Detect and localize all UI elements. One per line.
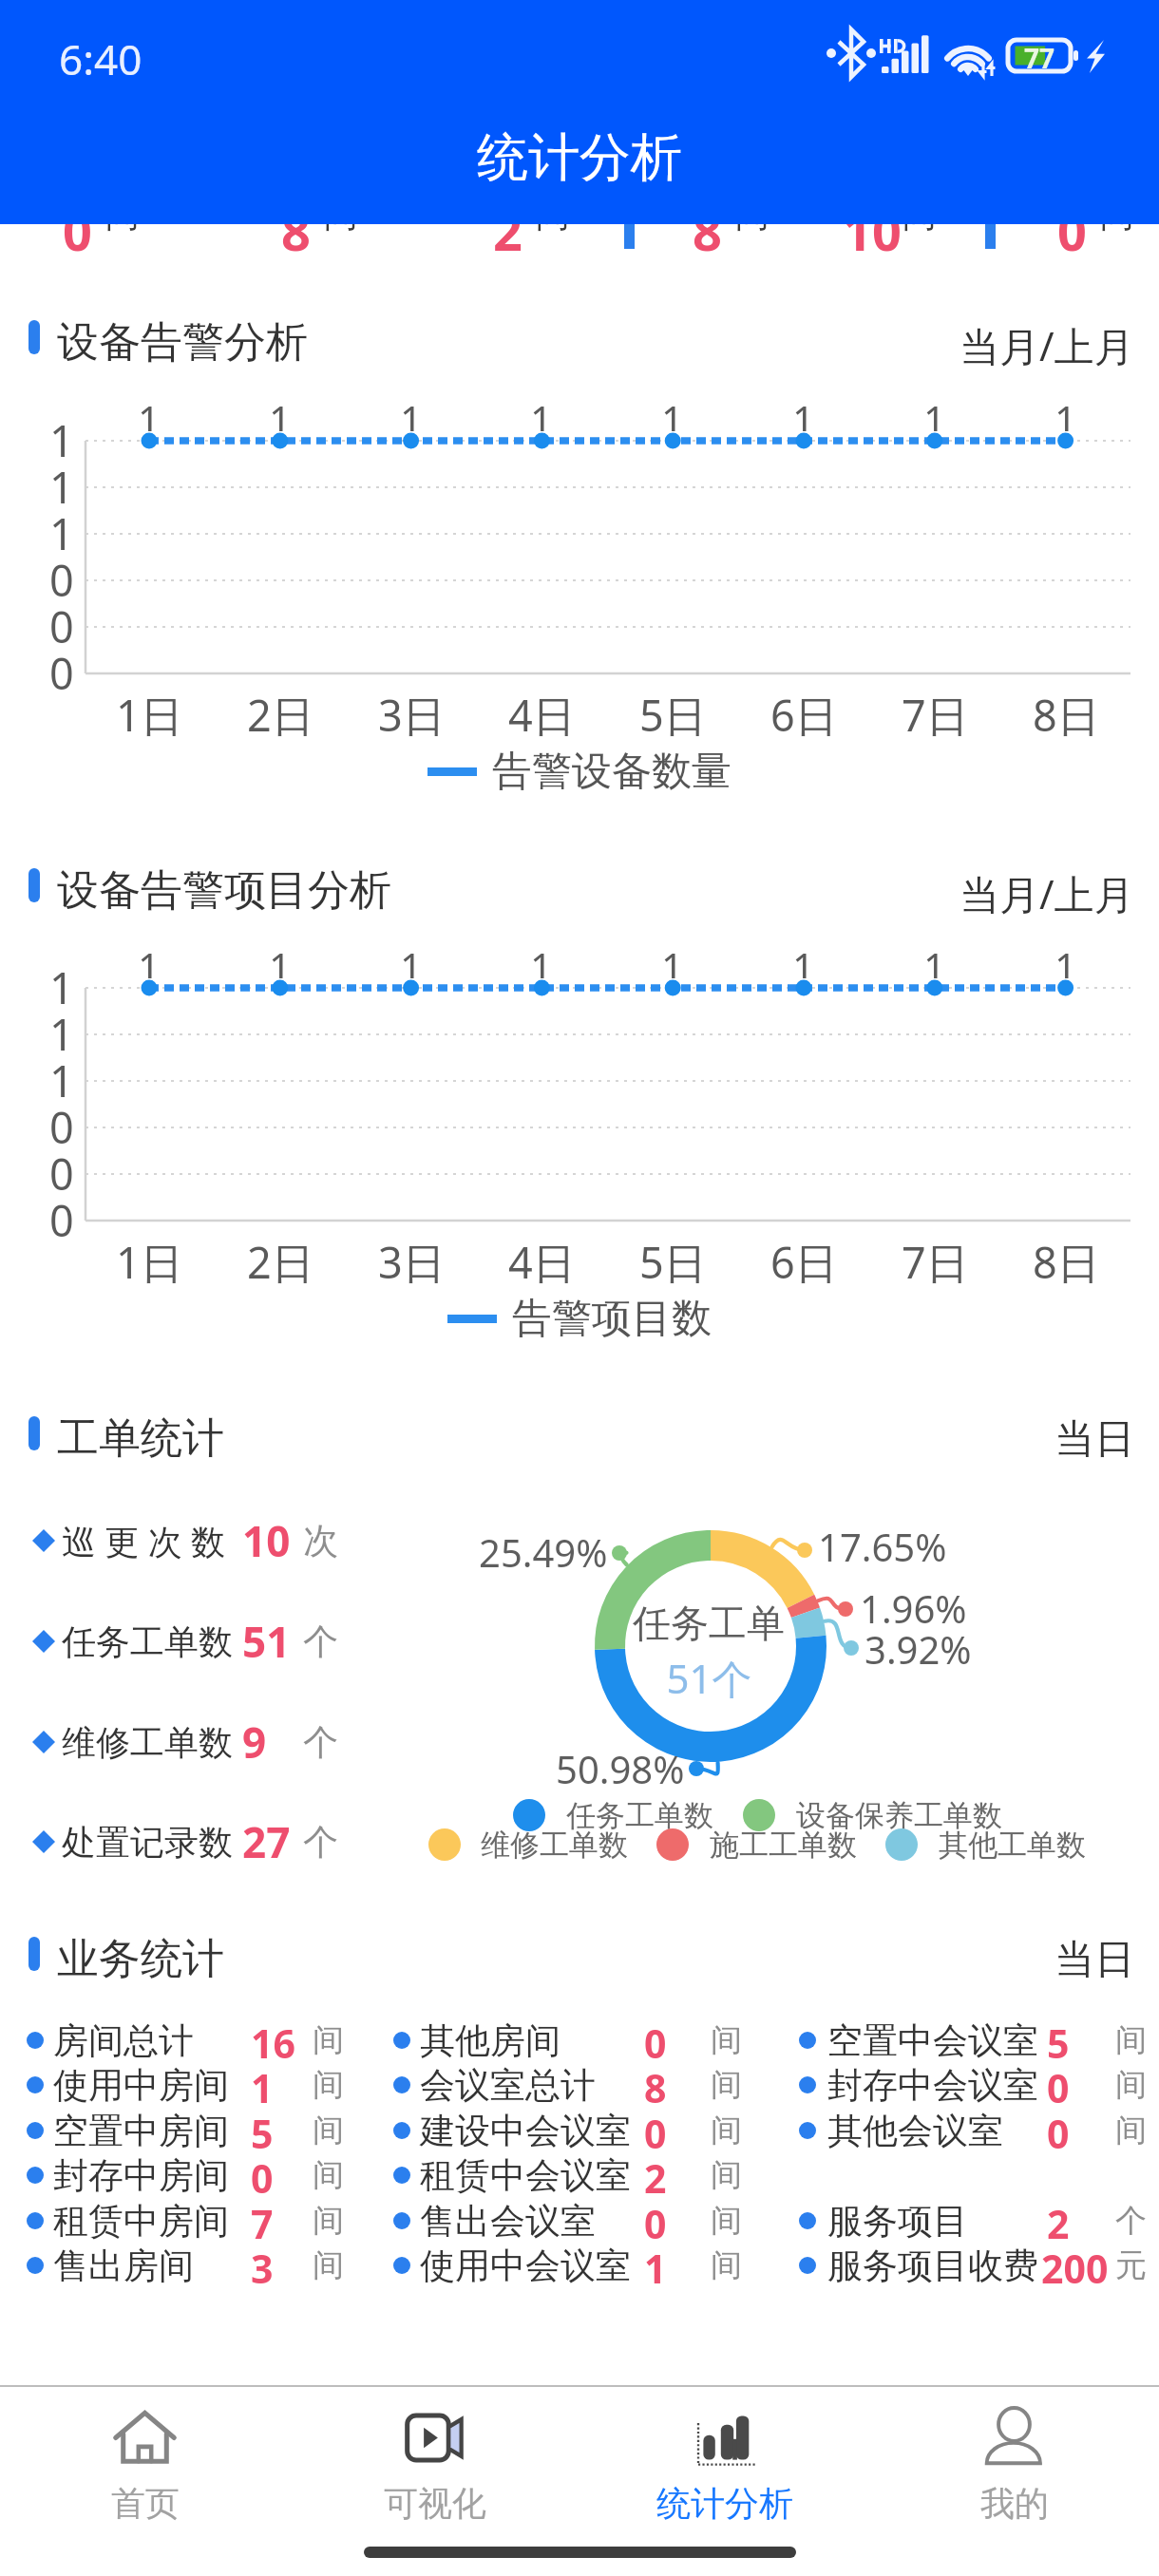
- staticText: 间: [711, 2111, 742, 2150]
- staticText: 统计分析: [477, 125, 682, 190]
- staticText: 个: [303, 1720, 338, 1765]
- staticText: 0: [49, 644, 74, 701]
- button[interactable]: Visualization: [290, 2387, 579, 2525]
- staticText: 1: [644, 2242, 667, 2289]
- staticText: 4日: [508, 1233, 576, 1290]
- staticText: 1: [49, 411, 74, 468]
- staticText: 1: [530, 940, 553, 978]
- staticText: 租赁中会议室: [420, 2153, 631, 2198]
- staticText: 50.98%: [556, 1743, 685, 1794]
- staticText: 设备保养工单数: [796, 1797, 1002, 1834]
- staticText: 1日: [116, 1233, 183, 1290]
- staticText: 售出会议室: [420, 2199, 596, 2244]
- staticText: 间: [324, 193, 358, 236]
- staticText: 1: [530, 393, 553, 431]
- staticText: 工单统计: [57, 1412, 224, 1465]
- staticText: 空置中会议室: [827, 2018, 1038, 2063]
- staticText: 任务工单数: [566, 1797, 713, 1834]
- other: Status icons: [817, 24, 1121, 81]
- staticText: 建设中会议室: [420, 2109, 631, 2153]
- staticText: 间: [1115, 2111, 1147, 2150]
- staticText: 1: [1054, 940, 1077, 978]
- staticText: 间: [1115, 2065, 1147, 2105]
- staticText: 个: [1115, 2201, 1147, 2241]
- staticText: 次: [303, 1519, 338, 1563]
- staticText: 间: [711, 2245, 742, 2285]
- staticText: 间: [105, 193, 140, 236]
- staticText: 间: [711, 2201, 742, 2241]
- staticText: 3: [251, 2242, 274, 2289]
- staticText: 间: [711, 2155, 742, 2195]
- staticText: 6日: [770, 1233, 838, 1290]
- staticText: 1: [1054, 393, 1077, 431]
- staticText: 51个: [666, 1651, 752, 1698]
- staticText: 9: [242, 1714, 267, 1771]
- staticText: 使用中房间: [53, 2063, 229, 2108]
- staticText: 25.49%: [479, 1526, 608, 1578]
- staticText: 其他房间: [420, 2018, 560, 2063]
- staticText: 当日: [1054, 1414, 1134, 1465]
- staticText: 当月/上月: [959, 866, 1134, 920]
- staticText: 元: [1115, 2245, 1147, 2285]
- staticText: 使用中会议室: [420, 2244, 631, 2288]
- staticText: 服务项目收费: [827, 2244, 1038, 2288]
- staticText: 间: [313, 2201, 344, 2241]
- staticText: 0: [49, 551, 74, 608]
- staticText: 处置记录数: [62, 1821, 233, 1864]
- staticText: 业务统计: [57, 1933, 224, 1985]
- button[interactable]: Home: [0, 2387, 290, 2525]
- staticText: 1: [269, 940, 292, 978]
- staticText: 任务工单: [633, 1600, 785, 1647]
- button[interactable]: Profile: [869, 2387, 1159, 2525]
- staticText: 间: [536, 193, 570, 236]
- staticText: 2: [1047, 2197, 1070, 2245]
- staticText: 服务项目: [827, 2199, 968, 2244]
- staticText: 0: [644, 2107, 667, 2154]
- staticText: 0: [1047, 2107, 1070, 2154]
- staticText: 77: [1024, 40, 1055, 71]
- staticText: 0: [644, 2017, 667, 2064]
- staticText: 51: [242, 1613, 291, 1670]
- staticText: 首页: [111, 2482, 180, 2525]
- staticText: 维修工单数: [62, 1721, 233, 1764]
- staticText: 2日: [247, 686, 314, 743]
- staticText: 1: [49, 458, 74, 515]
- staticText: 200: [1041, 2242, 1109, 2289]
- staticText: 间: [902, 193, 937, 236]
- staticText: 告警设备数量: [492, 747, 731, 797]
- staticText: 当日: [1054, 1935, 1134, 1985]
- staticText: 8: [281, 196, 311, 266]
- staticText: 1: [400, 940, 423, 978]
- staticText: 任务工单数: [62, 1620, 233, 1663]
- button[interactable]: Statistics: [579, 2387, 869, 2525]
- staticText: 设备告警项目分析: [57, 864, 391, 917]
- staticText: 10: [843, 196, 902, 266]
- staticText: 1: [400, 393, 423, 431]
- staticText: 5日: [639, 686, 707, 743]
- staticText: 6日: [770, 686, 838, 743]
- staticText: 1: [661, 393, 684, 431]
- staticText: 1: [138, 393, 161, 431]
- staticText: 2: [644, 2151, 667, 2199]
- staticText: 7日: [902, 686, 969, 743]
- staticText: 7日: [902, 1233, 969, 1290]
- staticText: 房间总计: [53, 2018, 194, 2063]
- staticText: 间: [313, 2065, 344, 2105]
- staticText: 1: [49, 958, 74, 1015]
- staticText: 当月/上月: [959, 318, 1134, 372]
- staticText: 告警项目数: [512, 1294, 712, 1344]
- staticText: 统计分析: [656, 2482, 793, 2525]
- staticText: 8: [693, 196, 722, 266]
- staticText: 施工工单数: [710, 1827, 857, 1864]
- staticText: 间: [1100, 193, 1134, 236]
- staticText: 间: [313, 2245, 344, 2285]
- staticText: 1: [923, 393, 946, 431]
- staticText: 间: [711, 2020, 742, 2060]
- staticText: 0: [49, 597, 74, 654]
- staticText: 其他工单数: [939, 1827, 1086, 1864]
- staticText: 封存中会议室: [827, 2063, 1038, 2108]
- staticText: 17.65%: [818, 1521, 947, 1572]
- staticText: 间: [313, 2020, 344, 2060]
- staticText: 1: [661, 940, 684, 978]
- staticText: 5: [1047, 2017, 1070, 2064]
